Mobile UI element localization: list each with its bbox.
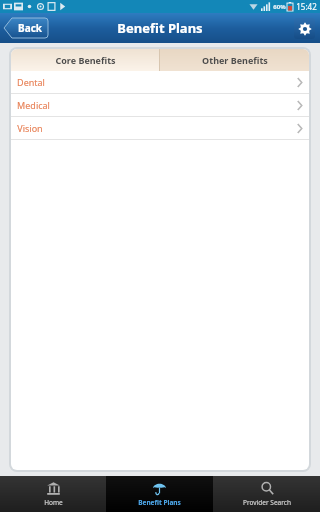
button[interactable]: Vision bbox=[11, 117, 309, 139]
staticText: Core Benefits bbox=[55, 54, 116, 66]
button[interactable]: Core Benefits bbox=[11, 49, 160, 71]
staticText: Back bbox=[18, 21, 42, 35]
staticText: Benefit Plans bbox=[117, 19, 203, 37]
button[interactable]: Settings bbox=[294, 18, 315, 39]
staticText: 15:42 bbox=[296, 1, 317, 12]
button[interactable]: Back bbox=[4, 18, 48, 38]
staticText: Provider Search bbox=[243, 498, 291, 507]
staticText: Other Benefits bbox=[202, 54, 268, 66]
staticText: Benefit Plans bbox=[138, 498, 181, 507]
button[interactable]: Dental bbox=[11, 71, 309, 93]
staticText: Vision bbox=[17, 122, 43, 134]
staticText: 60% bbox=[273, 3, 286, 11]
button[interactable]: Provider Search bbox=[213, 476, 320, 512]
staticText: Dental bbox=[17, 76, 45, 88]
button[interactable]: Medical bbox=[11, 94, 309, 116]
button[interactable]: Home bbox=[0, 476, 106, 512]
button[interactable]: Benefit Plans bbox=[106, 476, 213, 512]
button[interactable]: Other Benefits bbox=[160, 49, 309, 71]
staticText: Medical bbox=[17, 99, 50, 111]
staticText: Home bbox=[44, 498, 63, 507]
